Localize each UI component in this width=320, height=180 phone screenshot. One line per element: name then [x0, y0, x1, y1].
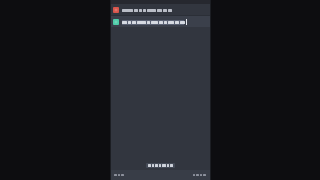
- button[interactable]: Selected item: [110, 16, 210, 27]
- button[interactable]: Status bar: [110, 170, 210, 180]
- button[interactable]: Status: [146, 163, 175, 168]
- button[interactable]: Error item: [110, 4, 210, 15]
